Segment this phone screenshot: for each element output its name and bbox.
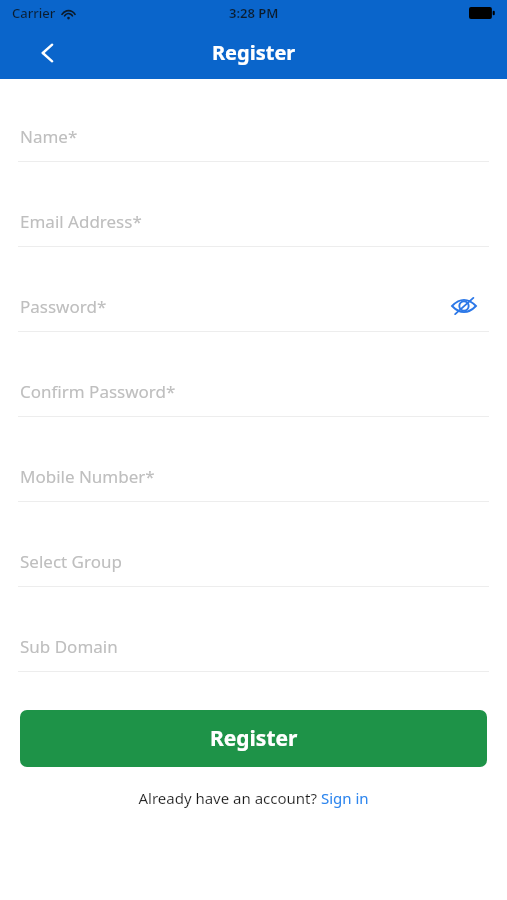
staticText: Select Group bbox=[20, 550, 122, 573]
staticText: Mobile Number* bbox=[20, 465, 155, 488]
staticText: Sub Domain bbox=[20, 635, 118, 658]
staticText: Register bbox=[210, 724, 298, 753]
button[interactable]: Confirm Password* bbox=[0, 367, 507, 415]
staticText: Confirm Password* bbox=[20, 380, 176, 403]
button[interactable]: Back bbox=[24, 29, 72, 77]
button[interactable]: Sub Domain bbox=[0, 622, 507, 670]
button[interactable]: Email Address* bbox=[0, 197, 507, 245]
staticText: Register bbox=[212, 39, 296, 66]
staticText: Name* bbox=[20, 125, 78, 148]
staticText: 3:28 PM bbox=[229, 4, 279, 22]
staticText: Password* bbox=[20, 295, 107, 318]
staticText: Carrier bbox=[12, 4, 56, 22]
button[interactable]: Name* bbox=[0, 112, 507, 160]
button[interactable]: Toggle password visibility bbox=[448, 290, 480, 322]
button[interactable]: Register bbox=[20, 710, 487, 767]
button[interactable]: Password* bbox=[0, 282, 507, 330]
staticText: Already have an account? Sign in bbox=[138, 788, 369, 808]
staticText: Email Address* bbox=[20, 210, 142, 233]
button[interactable]: Select Group bbox=[0, 537, 507, 585]
button[interactable]: Mobile Number* bbox=[0, 452, 507, 500]
button[interactable]: Already have an account? Sign in bbox=[0, 784, 507, 812]
